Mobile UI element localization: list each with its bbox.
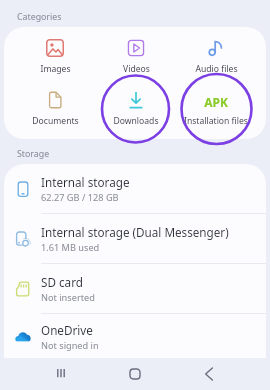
button[interactable]: Images xyxy=(15,39,95,76)
button[interactable]: Internal storage xyxy=(4,164,266,213)
staticText: Images xyxy=(40,63,71,75)
button[interactable]: Internal storage (Dual Messenger) xyxy=(4,214,266,263)
staticText: Audio files xyxy=(195,63,238,75)
button[interactable]: OneDrive xyxy=(4,314,266,359)
staticText: 1.61 MB used xyxy=(41,241,100,254)
button[interactable]: APK xyxy=(176,91,256,128)
staticText: Videos xyxy=(123,63,150,75)
button[interactable]: Videos xyxy=(96,39,176,76)
staticText: Downloads xyxy=(113,115,159,127)
button[interactable]: SD card xyxy=(4,264,266,313)
staticText: APK xyxy=(204,94,228,110)
button[interactable]: Documents xyxy=(15,91,95,128)
button[interactable]: Recent apps xyxy=(24,358,98,390)
staticText: Categories xyxy=(17,11,62,23)
button[interactable]: Downloads xyxy=(96,91,176,128)
button[interactable]: Home xyxy=(98,358,172,390)
button[interactable]: Back xyxy=(172,358,246,390)
staticText: Internal storage (Dual Messenger) xyxy=(41,224,229,240)
staticText: Storage xyxy=(17,148,50,160)
staticText: Installation files xyxy=(184,115,248,127)
staticText: Documents xyxy=(32,115,79,127)
staticText: Not inserted xyxy=(41,291,95,304)
staticText: SD card xyxy=(41,274,83,290)
button[interactable]: Audio files xyxy=(176,39,256,76)
staticText: Not signed in xyxy=(41,339,99,352)
staticText: OneDrive xyxy=(41,322,93,338)
staticText: 62.27 GB / 128 GB xyxy=(41,191,119,204)
staticText: Internal storage xyxy=(41,174,130,190)
